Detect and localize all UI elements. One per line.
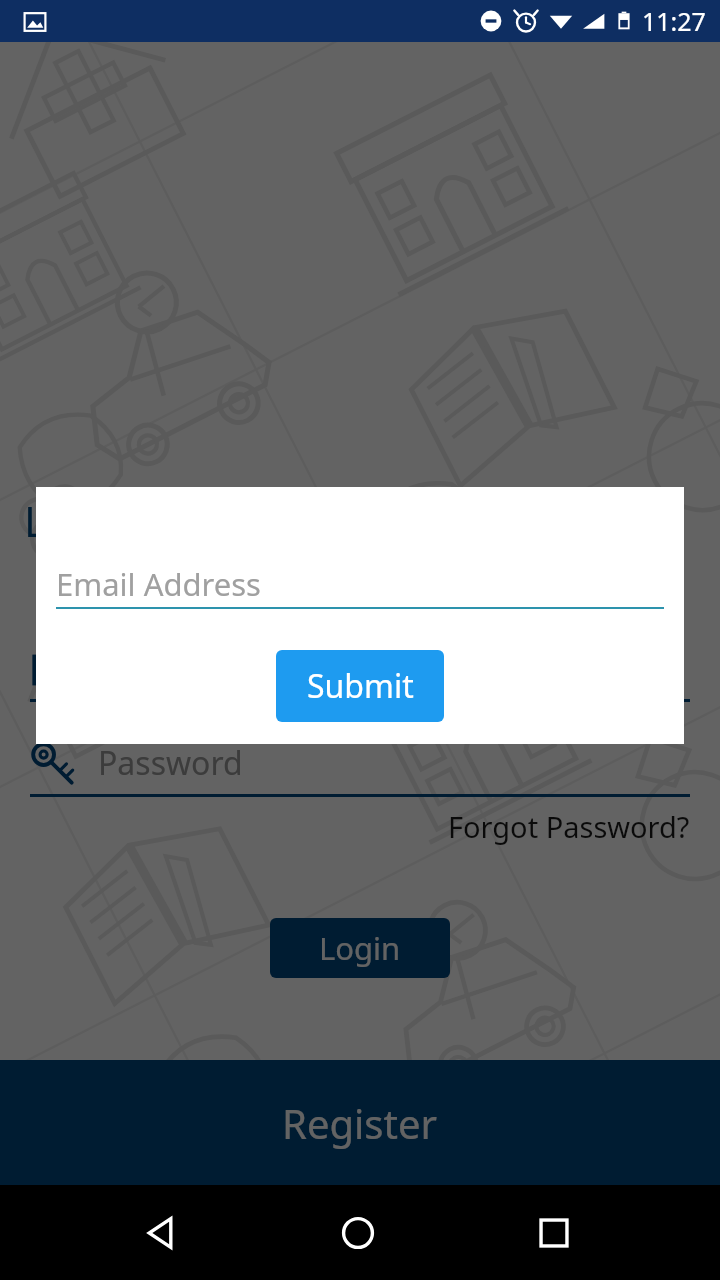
staticText: Register <box>282 1096 438 1150</box>
staticText: Email Address <box>56 563 261 605</box>
staticText: Password <box>98 741 243 785</box>
button[interactable]: Login <box>270 918 450 978</box>
staticText: Login <box>319 927 401 969</box>
button[interactable]: Email Address <box>56 563 664 609</box>
button[interactable]: Forgot Password? <box>0 800 720 852</box>
staticText: Login <box>24 492 135 549</box>
button[interactable]: Submit <box>276 650 444 722</box>
button[interactable]: Home <box>316 1191 400 1275</box>
button[interactable]: Back <box>120 1191 204 1275</box>
staticText: 11:27 <box>642 4 706 38</box>
button[interactable]: Recent apps <box>512 1191 596 1275</box>
staticText: Submit <box>307 664 414 708</box>
staticText: Forgot Password? <box>448 807 690 846</box>
button[interactable]: Register <box>0 1060 720 1185</box>
